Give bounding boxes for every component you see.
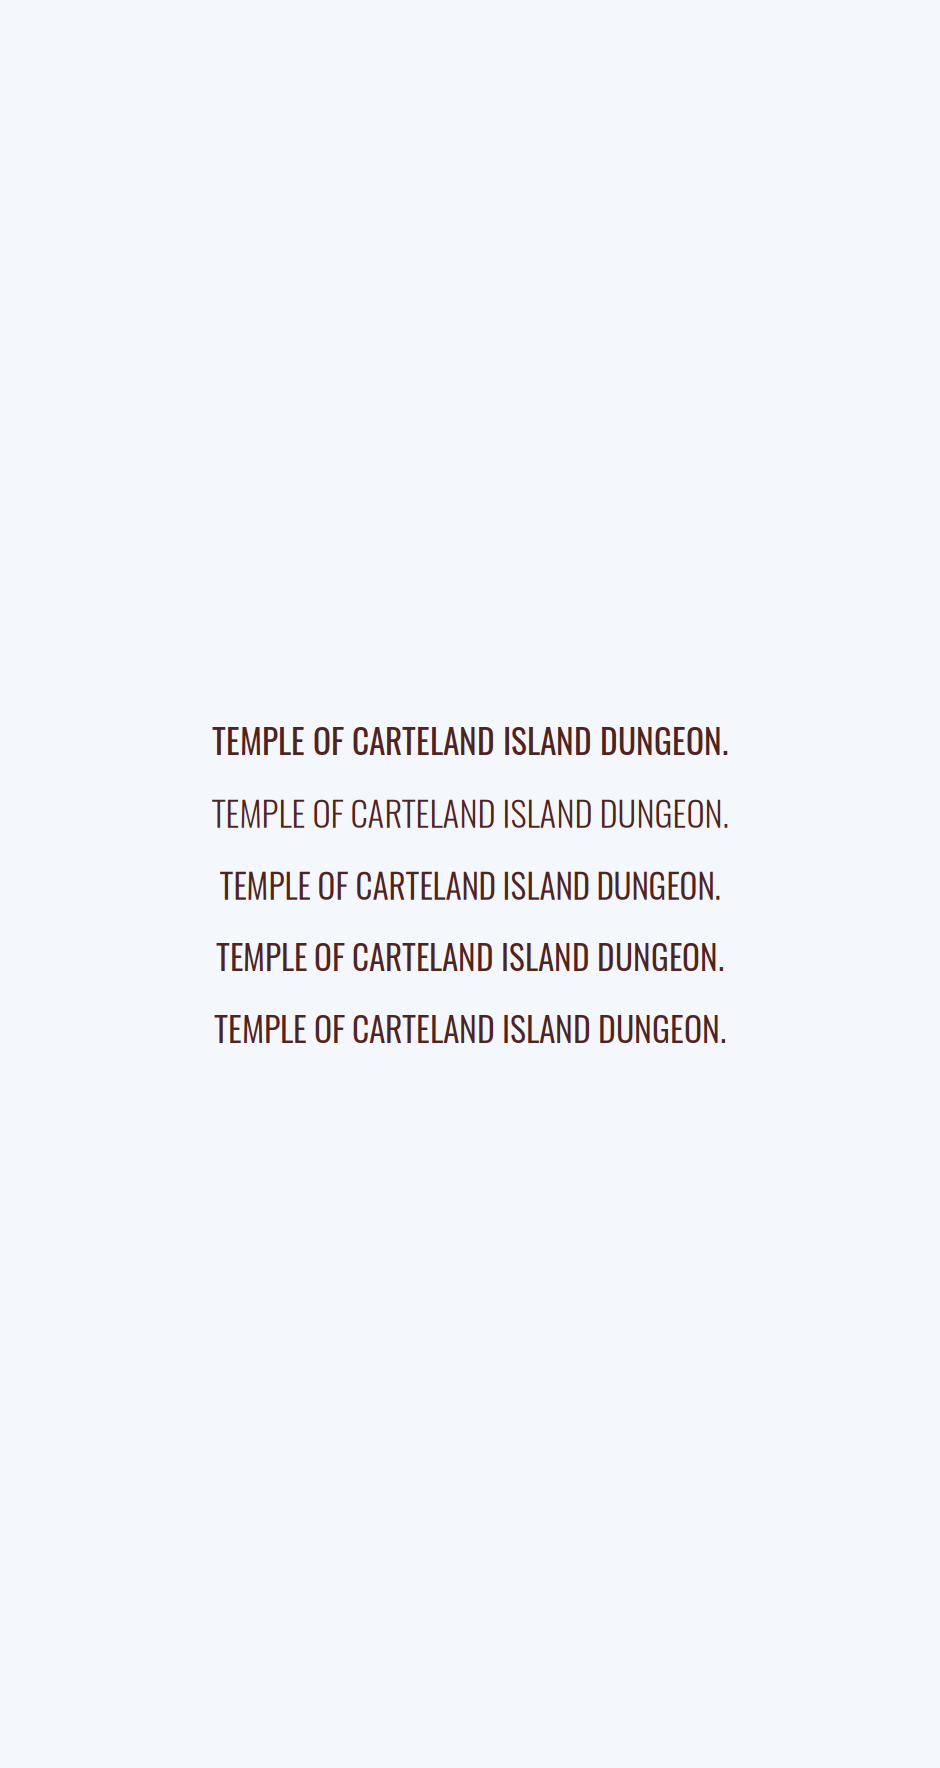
staticText: TEMPLE OF CARTELAND ISLAND DUNGEON. bbox=[211, 786, 728, 838]
staticText: TEMPLE OF CARTELAND ISLAND DUNGEON. bbox=[212, 715, 728, 764]
staticText: TEMPLE OF CARTELAND ISLAND DUNGEON. bbox=[216, 931, 724, 981]
staticText: TEMPLE OF CARTELAND ISLAND DUNGEON. bbox=[219, 860, 720, 909]
staticText: TEMPLE OF CARTELAND ISLAND DUNGEON. bbox=[214, 1003, 726, 1053]
